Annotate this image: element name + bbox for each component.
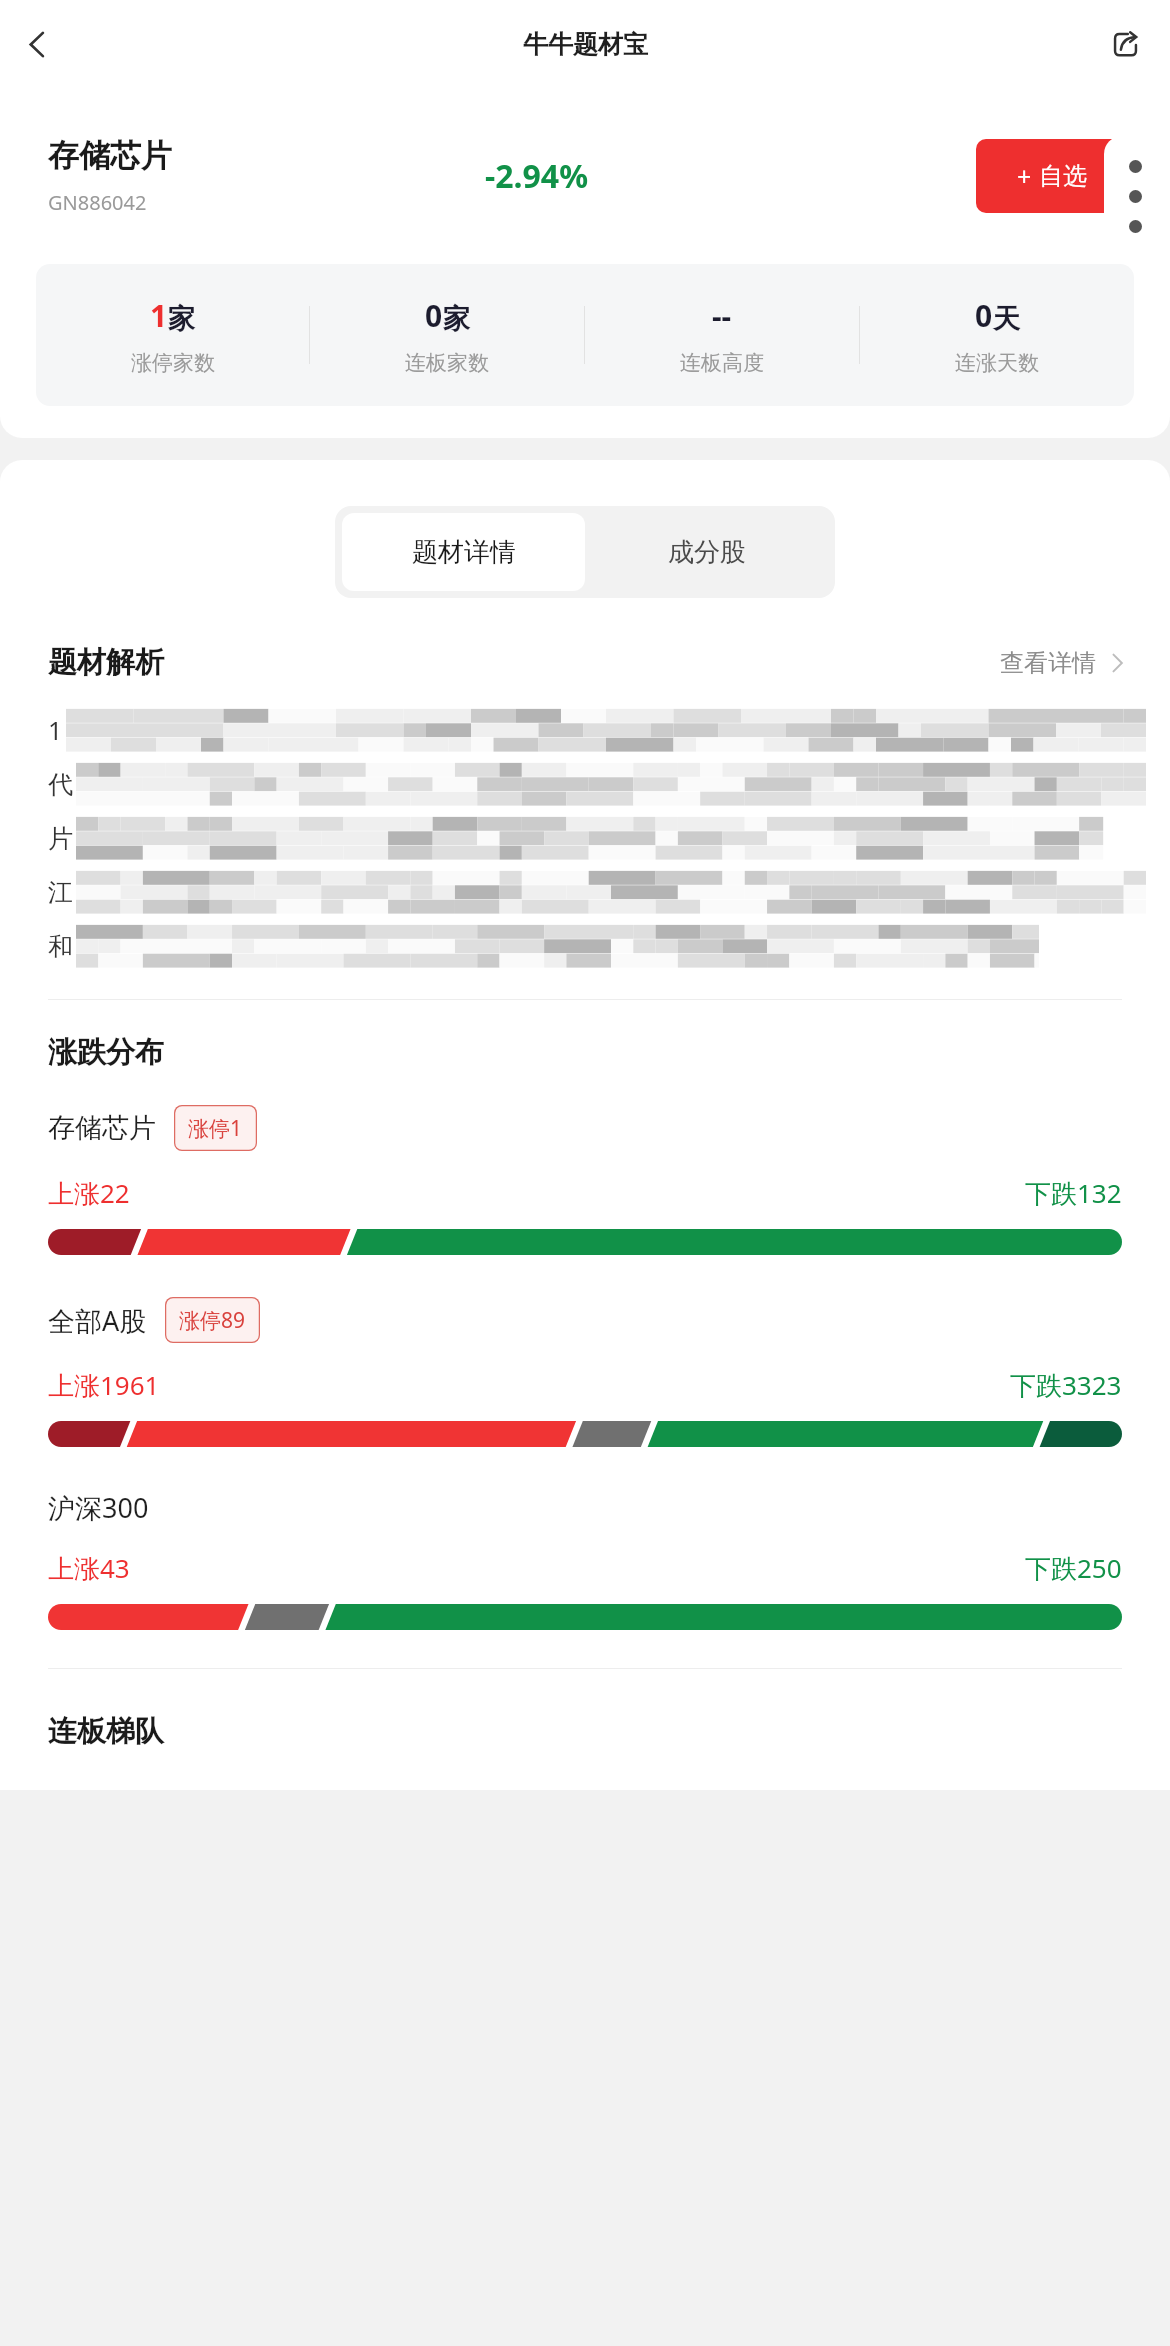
button[interactable]: 查看详情 xyxy=(1000,648,1128,678)
staticText: 存储芯片 xyxy=(48,1111,156,1145)
button[interactable]: 沪深300 xyxy=(48,1489,1122,1630)
button[interactable]: Share xyxy=(1096,15,1154,73)
staticText: 下跌132 xyxy=(1025,1175,1122,1211)
button[interactable]: 成分股 xyxy=(585,513,828,591)
staticText: 成分股 xyxy=(668,536,746,569)
staticText: + xyxy=(1017,159,1032,193)
button[interactable]: Back xyxy=(8,15,66,73)
staticText: 查看详情 xyxy=(1000,648,1096,678)
staticText: 自选 xyxy=(1039,161,1087,191)
button[interactable]: + xyxy=(976,139,1128,213)
staticText: GN886042 xyxy=(48,189,147,216)
staticText: 涨跌分布 xyxy=(48,1034,164,1071)
staticText: 0 xyxy=(975,295,993,336)
staticText: 涨停家数 xyxy=(131,350,215,376)
staticText: 代 xyxy=(48,769,73,800)
button[interactable]: 0 xyxy=(860,295,1134,376)
button[interactable]: -- xyxy=(585,295,859,376)
staticText: 家 xyxy=(168,302,195,336)
staticText: 上涨43 xyxy=(48,1550,130,1586)
staticText: 上涨22 xyxy=(48,1175,130,1211)
staticText: -- xyxy=(712,295,732,336)
staticText: 题材解析 xyxy=(48,644,164,681)
button[interactable]: 1 xyxy=(36,295,309,376)
staticText: 涨停1 xyxy=(188,1114,243,1143)
staticText: 涨停89 xyxy=(179,1306,246,1335)
button[interactable]: 存储芯片 xyxy=(48,1105,1122,1255)
button[interactable]: 全部A股 xyxy=(48,1297,1122,1447)
staticText: 家 xyxy=(443,302,470,336)
staticText: 1 xyxy=(150,295,168,336)
staticText: 天 xyxy=(993,302,1020,336)
staticText: 连板家数 xyxy=(405,350,489,376)
staticText: 题材详情 xyxy=(412,536,516,569)
staticText: -2.94% xyxy=(485,154,589,198)
staticText: 连板高度 xyxy=(680,350,764,376)
button[interactable]: 0 xyxy=(310,295,584,376)
staticText: 牛牛题材宝 xyxy=(523,29,648,60)
staticText: 1 xyxy=(48,713,63,747)
button[interactable]: 题材详情 xyxy=(342,513,585,591)
staticText: 连涨天数 xyxy=(955,350,1039,376)
staticText: 片 xyxy=(48,823,73,854)
staticText: 江 xyxy=(48,877,73,908)
staticText: 上涨1961 xyxy=(48,1367,160,1403)
staticText: 下跌250 xyxy=(1025,1550,1122,1586)
staticText: 和 xyxy=(48,931,73,962)
staticText: 存储芯片 xyxy=(48,136,172,175)
staticText: 连板梯队 xyxy=(48,1713,164,1750)
staticText: 沪深300 xyxy=(48,1489,149,1526)
button[interactable]: More options xyxy=(1104,136,1166,256)
staticText: 下跌3323 xyxy=(1010,1367,1122,1403)
staticText: 全部A股 xyxy=(48,1302,147,1339)
staticText: 0 xyxy=(425,295,443,336)
